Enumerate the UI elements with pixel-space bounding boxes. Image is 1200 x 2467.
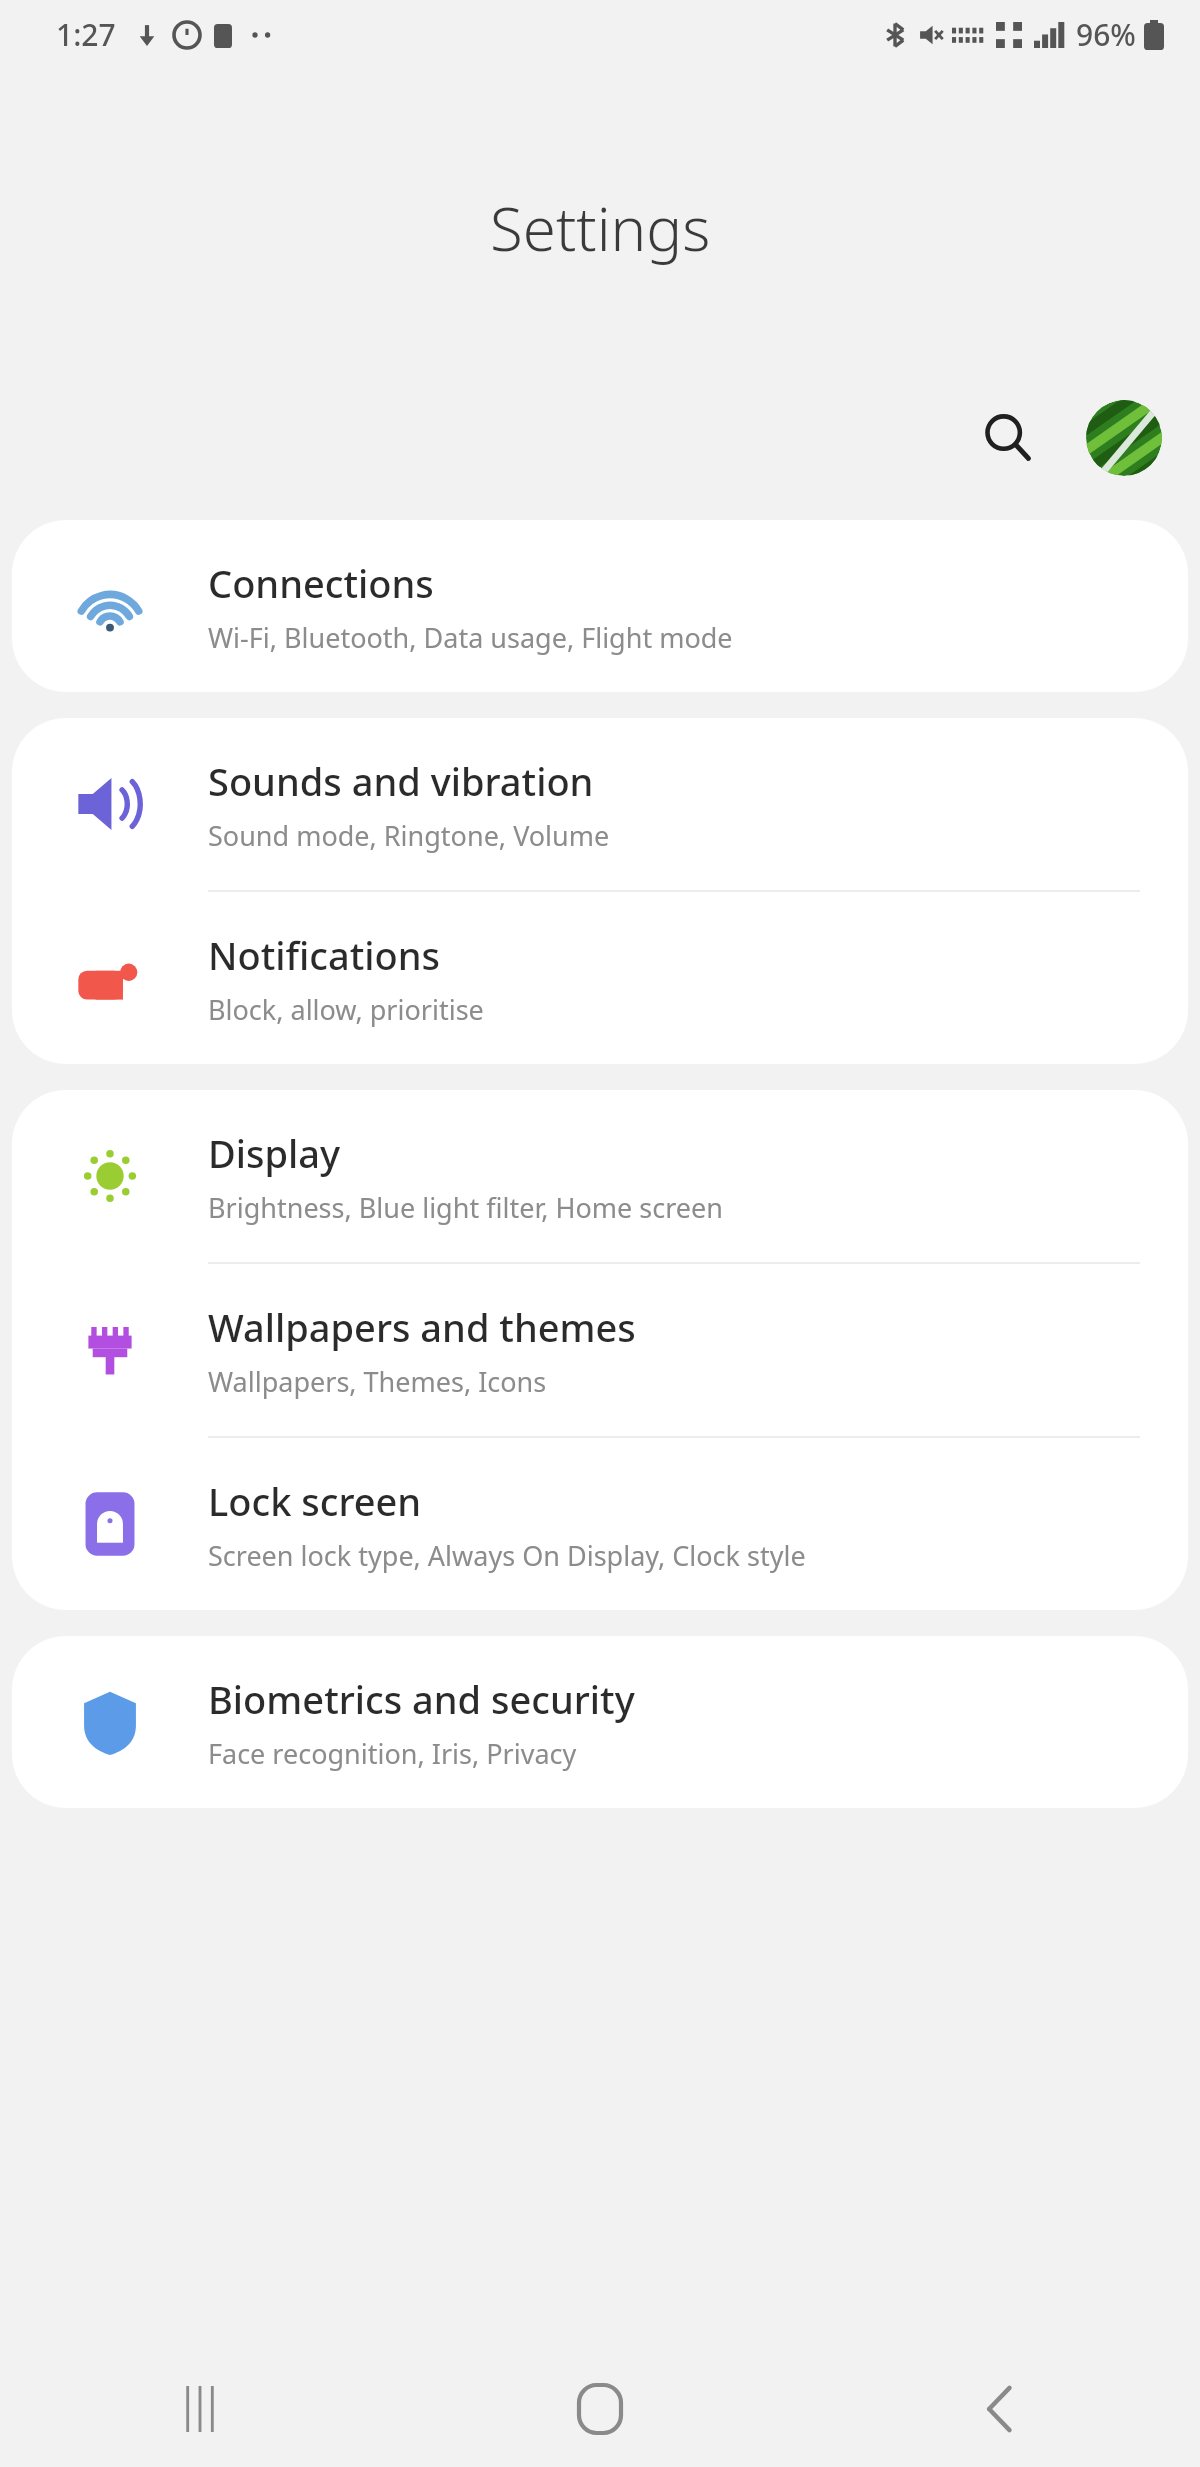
button[interactable]: Display bbox=[12, 1090, 1188, 1262]
button[interactable]: Wallpapers and themes bbox=[12, 1264, 1188, 1436]
button[interactable]: Home bbox=[400, 2350, 800, 2467]
staticText: Settings bbox=[490, 187, 711, 269]
staticText: Brightness, Blue light filter, Home scre… bbox=[208, 1189, 723, 1226]
staticText: 1:27 bbox=[56, 14, 116, 55]
button[interactable]: Search bbox=[966, 396, 1050, 480]
staticText: Wallpapers and themes bbox=[208, 1301, 636, 1353]
button[interactable]: Biometrics and security bbox=[12, 1636, 1188, 1808]
button[interactable]: Notifications bbox=[12, 892, 1188, 1064]
button[interactable]: Recents bbox=[0, 2350, 400, 2467]
staticText: Display bbox=[208, 1127, 341, 1179]
staticText: Sound mode, Ringtone, Volume bbox=[208, 817, 610, 854]
button[interactable]: Lock screen bbox=[12, 1438, 1188, 1610]
staticText: Biometrics and security bbox=[208, 1673, 635, 1725]
staticText: Face recognition, Iris, Privacy bbox=[208, 1735, 577, 1772]
staticText: Sounds and vibration bbox=[208, 755, 594, 807]
staticText: Wallpapers, Themes, Icons bbox=[208, 1363, 547, 1400]
button[interactable]: Sounds and vibration bbox=[12, 718, 1188, 890]
button[interactable]: Connections bbox=[12, 520, 1188, 692]
staticText: Connections bbox=[208, 557, 434, 609]
button[interactable]: Account bbox=[1086, 400, 1162, 476]
staticText: Wi-Fi, Bluetooth, Data usage, Flight mod… bbox=[208, 619, 733, 656]
button[interactable]: Back bbox=[800, 2350, 1200, 2467]
staticText: Screen lock type, Always On Display, Clo… bbox=[208, 1537, 806, 1574]
staticText: Notifications bbox=[208, 929, 441, 981]
staticText: Block, allow, prioritise bbox=[208, 991, 484, 1028]
staticText: 96% bbox=[1076, 14, 1136, 55]
staticText: Lock screen bbox=[208, 1475, 422, 1527]
